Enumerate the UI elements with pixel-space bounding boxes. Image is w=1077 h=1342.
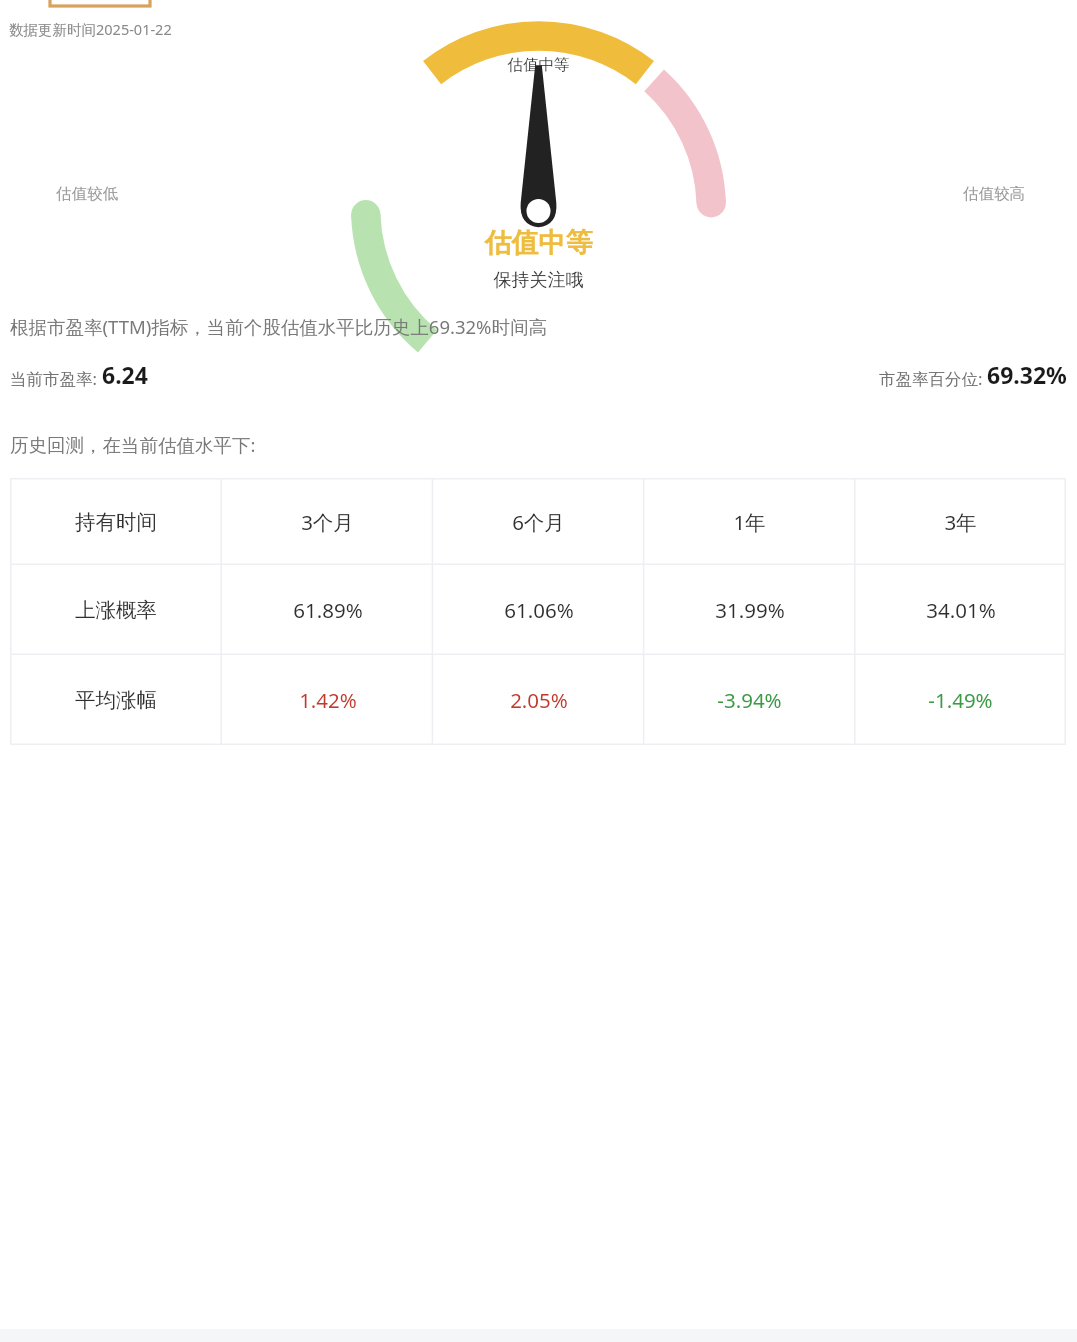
staticText: 1.42%: [299, 686, 357, 714]
staticText: 当前市盈率:: [10, 367, 102, 390]
staticText: 持有时间: [75, 509, 157, 535]
staticText: 61.06%: [504, 596, 574, 624]
staticText: 数据更新时间2025-01-22: [9, 19, 172, 39]
button[interactable]: 持有时间: [10, 478, 222, 565]
button[interactable]: 3年: [855, 478, 1066, 565]
staticText: 34.01%: [926, 596, 996, 624]
staticText: 3年: [944, 508, 977, 536]
staticText: 市盈率百分位:: [879, 367, 987, 390]
staticText: -3.94%: [717, 686, 782, 714]
staticText: -1.49%: [928, 686, 993, 714]
staticText: 历史回测，在当前估值水平下:: [10, 432, 256, 457]
button[interactable]: -3.94%: [644, 655, 855, 745]
staticText: 平均涨幅: [75, 687, 157, 713]
staticText: 61.89%: [293, 596, 363, 624]
staticText: 1年: [733, 508, 766, 536]
button[interactable]: 61.06%: [433, 565, 644, 655]
button[interactable]: 2.05%: [433, 655, 644, 745]
staticText: 估值较高: [963, 184, 1025, 204]
staticText: 6.24: [102, 359, 148, 390]
staticText: 69.32%: [987, 359, 1067, 390]
staticText: 估值较低: [56, 184, 118, 204]
button[interactable]: 6个月: [433, 478, 644, 565]
staticText: 上涨概率: [75, 597, 157, 623]
staticText: 根据市盈率(TTM)指标，当前个股估值水平比历史上69.32%时间高: [10, 314, 547, 339]
button[interactable]: 1.42%: [222, 655, 433, 745]
button[interactable]: 3个月: [222, 478, 433, 565]
button[interactable]: 61.89%: [222, 565, 433, 655]
staticText: 保持关注哦: [0, 269, 1077, 292]
button[interactable]: -1.49%: [855, 655, 1066, 745]
staticText: 2.05%: [510, 686, 568, 714]
staticText: 3个月: [301, 508, 354, 536]
button[interactable]: 31.99%: [644, 565, 855, 655]
staticText: 估值中等: [0, 55, 1077, 75]
button[interactable]: [50, 0, 150, 6]
button[interactable]: 上涨概率: [10, 565, 222, 655]
staticText: 估值中等: [0, 226, 1077, 260]
staticText: 6个月: [512, 508, 565, 536]
button[interactable]: 平均涨幅: [10, 655, 222, 745]
button[interactable]: 34.01%: [855, 565, 1066, 655]
button[interactable]: 1年: [644, 478, 855, 565]
staticText: 31.99%: [715, 596, 785, 624]
